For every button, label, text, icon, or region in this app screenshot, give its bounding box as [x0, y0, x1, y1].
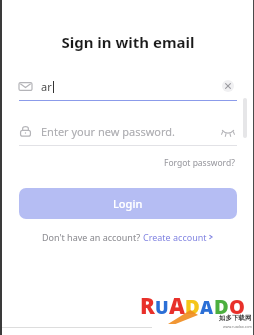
button[interactable]: Show password [219, 122, 237, 140]
staticText: Don't have an account? [42, 231, 143, 243]
staticText: 如多下载网 [219, 314, 252, 322]
staticText: A [169, 290, 185, 320]
staticText: Enter your new password. [41, 124, 176, 139]
button[interactable]: Forgot password? [162, 155, 237, 171]
button[interactable]: ar [19, 75, 237, 97]
button[interactable]: Login [19, 188, 237, 219]
button[interactable]: Enter your new password. [19, 120, 237, 142]
staticText: Create account [143, 231, 207, 243]
staticText: U [155, 295, 169, 320]
button[interactable]: Create account [143, 231, 214, 243]
staticText: A [200, 295, 214, 320]
staticText: Login [113, 196, 143, 211]
staticText: D [185, 293, 200, 320]
staticText: R [140, 290, 155, 320]
staticText: www.ruadao.com [223, 324, 252, 329]
staticText: O [229, 293, 245, 320]
staticText: Forgot password? [164, 157, 235, 169]
button[interactable]: Clear email [219, 77, 237, 95]
staticText: D [214, 293, 229, 320]
staticText: Sign in with email [19, 32, 237, 52]
staticText: ar [41, 79, 52, 94]
